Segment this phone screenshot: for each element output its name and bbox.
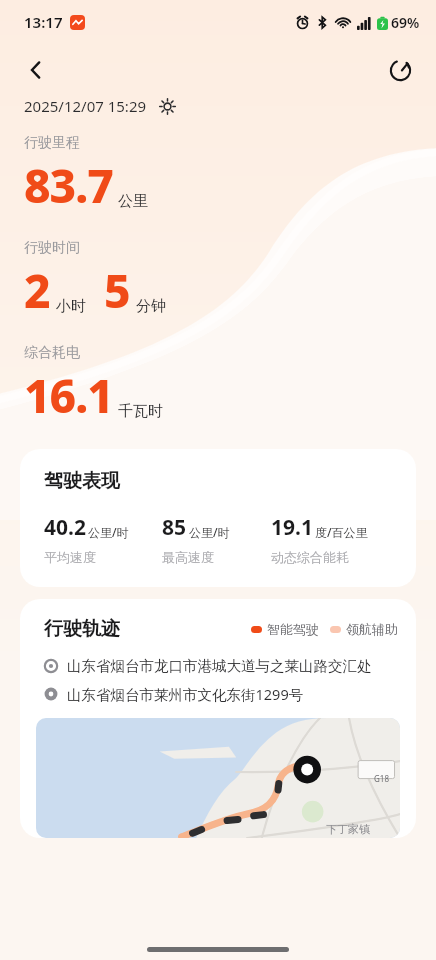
staticText: 2 — [24, 259, 51, 322]
staticText: 40.2 — [44, 513, 86, 542]
staticText: 85 — [162, 513, 187, 542]
staticText: 行驶轨迹 — [44, 617, 120, 641]
staticText: 智能驾驶 — [267, 621, 319, 637]
staticText: 2025/12/07 15:29 — [24, 96, 147, 116]
staticText: 5 — [104, 259, 131, 322]
staticText: 综合耗电 — [24, 344, 80, 362]
staticText: 平均速度 — [44, 549, 96, 565]
staticText: 小时 — [56, 297, 86, 316]
staticText: 16.1 — [24, 364, 113, 427]
staticText: 度/百公里 — [315, 524, 368, 540]
staticText: 动态综合能耗 — [271, 549, 349, 565]
staticText: 行驶里程 — [24, 134, 80, 152]
staticText: 山东省烟台市龙口市港城大道与之莱山路交汇处 — [67, 657, 372, 675]
staticText: 下丁家镇 — [326, 822, 370, 836]
button[interactable]: 行驶轨迹 — [20, 599, 416, 838]
button[interactable]: Share — [378, 48, 422, 92]
staticText: 最高速度 — [162, 549, 214, 565]
staticText: 行驶时间 — [24, 239, 80, 257]
staticText: G18 — [374, 773, 389, 784]
staticText: 驾驶表现 — [44, 469, 120, 493]
staticText: 领航辅助 — [346, 621, 398, 637]
staticText: 69% — [391, 13, 420, 32]
staticText: 山东省烟台市莱州市文化东街1299号 — [67, 684, 304, 704]
staticText: 公里 — [118, 192, 148, 211]
staticText: 13:17 — [24, 12, 63, 32]
button[interactable]: Back — [14, 48, 58, 92]
staticText: 19.1 — [271, 513, 313, 542]
staticText: 千瓦时 — [118, 402, 163, 421]
staticText: 公里/时 — [88, 524, 129, 540]
staticText: 83.7 — [24, 154, 113, 217]
staticText: 公里/时 — [189, 524, 230, 540]
button[interactable]: 驾驶表现 — [20, 449, 416, 587]
staticText: 分钟 — [136, 297, 166, 316]
